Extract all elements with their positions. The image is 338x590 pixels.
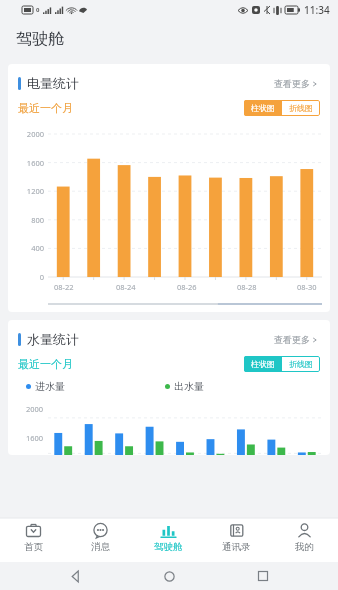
staticText: 最近一个月 bbox=[18, 101, 73, 115]
staticText: 查看更多 bbox=[274, 334, 310, 345]
other: 消息 bbox=[93, 523, 108, 538]
staticText: 出水量 bbox=[174, 380, 204, 393]
staticText: 08-30 bbox=[297, 282, 317, 292]
other: 首页 bbox=[26, 523, 41, 538]
staticText: 通讯录 bbox=[222, 541, 251, 553]
staticText: 消息 bbox=[91, 541, 110, 553]
staticText: 电量统计 bbox=[27, 75, 79, 91]
button[interactable]: 柱状图 bbox=[244, 100, 282, 116]
staticText: 折线图 bbox=[289, 359, 313, 369]
staticText: 水量统计 bbox=[27, 331, 79, 347]
button[interactable]: 驾驶舱 bbox=[134, 518, 202, 562]
button[interactable]: 柱状图 bbox=[244, 356, 282, 372]
staticText: 查看更多 bbox=[274, 78, 310, 89]
staticText: 首页 bbox=[24, 541, 43, 553]
staticText: 11:34 bbox=[304, 3, 330, 17]
staticText: 驾驶舱 bbox=[16, 29, 64, 49]
button[interactable]: 查看更多 bbox=[272, 74, 320, 93]
other: 驾驶舱 bbox=[161, 523, 176, 538]
staticText: 我的 bbox=[295, 541, 314, 553]
button[interactable]: 通讯录 bbox=[202, 518, 270, 562]
staticText: 最近一个月 bbox=[18, 357, 73, 371]
staticText: 柱状图 bbox=[251, 103, 275, 113]
staticText: 08-22 bbox=[54, 282, 74, 292]
staticText: 0 bbox=[36, 6, 40, 14]
staticText: 1600 bbox=[26, 433, 44, 443]
staticText: 2000 bbox=[26, 404, 44, 414]
staticText: 0 bbox=[39, 272, 44, 282]
staticText: 800 bbox=[31, 215, 44, 225]
other: Home bbox=[164, 571, 175, 582]
button[interactable]: 查看更多 bbox=[272, 330, 320, 349]
other: 我的 bbox=[297, 523, 312, 538]
button[interactable]: 我的 bbox=[270, 518, 338, 562]
button[interactable]: 折线图 bbox=[282, 100, 320, 116]
staticText: 08-26 bbox=[177, 282, 197, 292]
staticText: 400 bbox=[31, 243, 44, 253]
other: 通讯录 bbox=[229, 523, 244, 538]
staticText: 1600 bbox=[26, 158, 44, 168]
staticText: 08-28 bbox=[237, 282, 257, 292]
staticText: 2000 bbox=[26, 129, 44, 139]
button[interactable]: 消息 bbox=[67, 518, 134, 562]
staticText: 1200 bbox=[26, 186, 44, 196]
button[interactable]: 首页 bbox=[0, 518, 67, 562]
staticText: 08-24 bbox=[116, 282, 136, 292]
staticText: 进水量 bbox=[35, 380, 65, 393]
staticText: 驾驶舱 bbox=[154, 541, 183, 553]
staticText: 折线图 bbox=[289, 103, 313, 113]
other: Back bbox=[70, 571, 81, 582]
other: Recents bbox=[258, 571, 268, 581]
staticText: 柱状图 bbox=[251, 359, 275, 369]
button[interactable]: 折线图 bbox=[282, 356, 320, 372]
